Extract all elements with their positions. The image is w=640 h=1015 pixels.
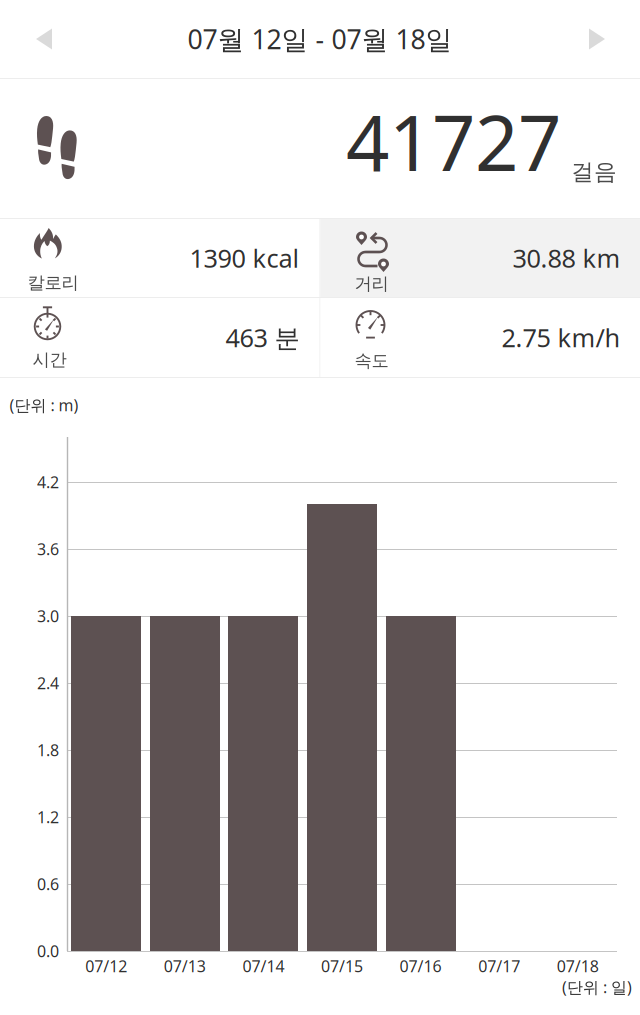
- staticText: 3.6: [37, 538, 59, 560]
- staticText: 0.6: [37, 873, 59, 895]
- staticText: 41727: [346, 91, 561, 192]
- staticText: 거리: [354, 273, 388, 294]
- staticText: (단위 : m): [9, 394, 78, 416]
- staticText: 07월 12일 - 07월 18일: [187, 21, 452, 57]
- button[interactable]: 속도: [320, 298, 640, 377]
- staticText: 걸음: [571, 158, 617, 186]
- button[interactable]: 칼로리: [0, 219, 319, 297]
- staticText: 시간: [32, 349, 66, 370]
- staticText: 2.4: [37, 672, 59, 694]
- button[interactable]: Previous week: [0, 0, 76, 78]
- staticText: 1390 kcal: [189, 241, 299, 275]
- staticText: 07/13: [164, 955, 206, 977]
- staticText: (단위 : 일): [562, 976, 632, 998]
- staticText: 칼로리: [27, 272, 78, 293]
- button[interactable]: 시간: [0, 298, 319, 377]
- staticText: 30.88 km: [512, 241, 620, 275]
- staticText: 07/15: [321, 955, 363, 977]
- staticText: 3.0: [37, 605, 59, 627]
- staticText: 4.2: [37, 471, 59, 493]
- staticText: 속도: [354, 350, 388, 371]
- staticText: 1.8: [37, 739, 59, 761]
- staticText: 463 분: [225, 321, 299, 354]
- staticText: 07/17: [478, 955, 520, 977]
- staticText: 07/14: [242, 955, 284, 977]
- staticText: 07/18: [557, 955, 599, 977]
- button[interactable]: 거리: [320, 219, 640, 297]
- staticText: 07/12: [85, 955, 127, 977]
- staticText: 1.2: [37, 806, 59, 828]
- staticText: 2.75 km/h: [501, 321, 620, 354]
- staticText: 07/16: [400, 955, 442, 977]
- button[interactable]: Next week: [565, 0, 640, 78]
- staticText: 0.0: [37, 940, 59, 962]
